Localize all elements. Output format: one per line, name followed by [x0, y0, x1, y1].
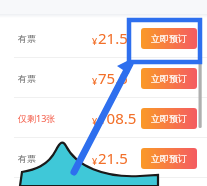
staticText: 有票 — [18, 33, 36, 44]
staticText: 21.5 — [98, 28, 128, 48]
staticText: 立即预订 — [151, 153, 187, 164]
staticText: 21.5 — [98, 148, 128, 168]
button[interactable]: 立即预订 — [141, 68, 197, 89]
staticText: 仅剩13张 — [18, 112, 56, 124]
staticText: 立即预订 — [151, 33, 187, 44]
staticText: 108.5 — [98, 108, 137, 128]
staticText: 75.5 — [98, 68, 128, 88]
staticText: ¥ — [92, 115, 98, 127]
staticText: 立即预订 — [151, 113, 187, 124]
staticText: 有票 — [18, 73, 36, 84]
button[interactable]: 立即预订 — [141, 108, 197, 129]
staticText: ¥ — [92, 155, 98, 167]
button[interactable]: 有票 — [0, 138, 207, 178]
staticText: ¥ — [92, 35, 98, 47]
button[interactable]: 立即预订 — [141, 28, 197, 49]
staticText: ¥ — [92, 75, 98, 87]
button[interactable]: 仅剩13张 — [0, 98, 207, 138]
button[interactable]: 有票 — [0, 58, 207, 98]
staticText: 立即预订 — [151, 73, 187, 84]
staticText: 有票 — [18, 153, 36, 164]
button[interactable]: 有票 — [0, 18, 207, 58]
button[interactable]: 立即预订 — [141, 148, 197, 169]
